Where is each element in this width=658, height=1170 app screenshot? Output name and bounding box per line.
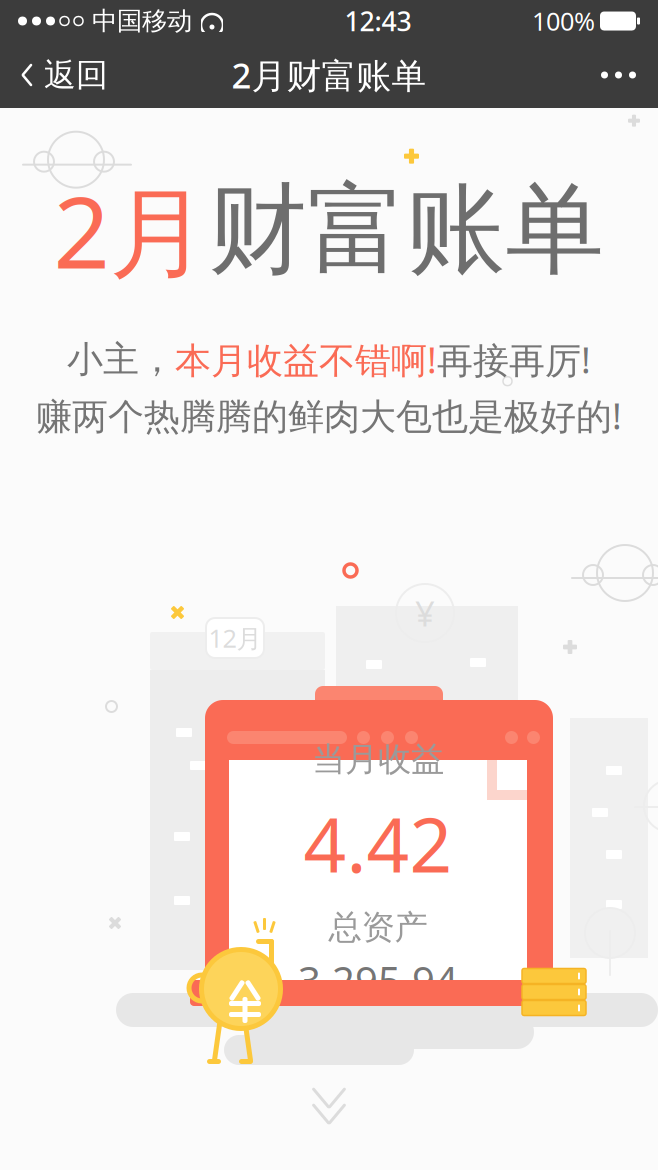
staticText: 总资产 [328, 907, 427, 948]
staticText: 当月收益 [312, 739, 444, 780]
staticText: 赚两个热腾腾的鲜肉大包也是极好的! [36, 391, 622, 439]
staticText: 中国移动 [92, 5, 192, 36]
staticText: 4.42 [303, 794, 452, 893]
staticText: 2月 [53, 165, 208, 296]
button[interactable]: Scroll down for more [294, 1076, 364, 1136]
staticText: 3,295.94 [298, 954, 458, 1007]
staticText: 财富账单 [208, 170, 604, 291]
staticText: 100% [532, 4, 595, 38]
staticText: ¥ [415, 590, 435, 636]
button[interactable]: 返回 [0, 42, 128, 108]
staticText: 12:43 [344, 3, 411, 39]
button[interactable]: More options [579, 42, 658, 108]
staticText: 小主， [67, 337, 175, 382]
staticText: 返回 [44, 55, 108, 95]
staticText: 2月财富账单 [231, 52, 426, 98]
staticText: 12月 [208, 621, 261, 655]
staticText: 再接再厉! [437, 336, 591, 383]
staticText: 本月收益不错啊! [175, 336, 437, 383]
